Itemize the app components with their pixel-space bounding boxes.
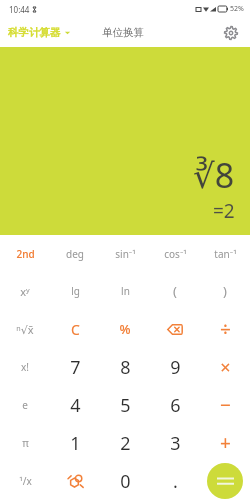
staticText: 9 (170, 355, 181, 380)
button[interactable]: 0 (100, 462, 150, 500)
staticText: 3 (170, 431, 181, 456)
staticText: % (119, 320, 131, 338)
button[interactable]: deg (50, 235, 100, 272)
staticText: xʸ (20, 284, 30, 299)
button[interactable]: × (200, 348, 250, 386)
button[interactable]: ¹/x (0, 462, 50, 500)
staticText: ∛8 (193, 152, 235, 198)
button[interactable]: cos⁻¹ (150, 235, 200, 272)
button[interactable]: e (0, 386, 50, 424)
button[interactable]: 5 (100, 386, 150, 424)
button[interactable]: x! (0, 348, 50, 386)
button[interactable]: 3 (150, 424, 200, 462)
staticText: 6 (170, 393, 181, 418)
button[interactable]: 单位换算 (102, 26, 144, 39)
button[interactable]: 2nd (0, 235, 50, 272)
staticText: 4 (70, 393, 81, 418)
staticText: e (22, 398, 28, 412)
staticText: sin⁻¹ (115, 247, 136, 261)
button[interactable]: % (100, 310, 150, 348)
staticText: x! (21, 360, 29, 374)
staticText: 2nd (16, 247, 35, 261)
button[interactable]: π (0, 424, 50, 462)
button[interactable]: tan⁻¹ (200, 235, 250, 272)
button[interactable]: + (200, 424, 250, 462)
staticText: deg (66, 247, 84, 261)
button[interactable]: Special function (50, 462, 100, 500)
button[interactable]: ) (200, 272, 250, 310)
staticText: tan⁻¹ (214, 247, 237, 261)
staticText: 5 (120, 393, 131, 418)
button[interactable]: Equals (207, 463, 243, 499)
staticText: 7 (70, 355, 81, 380)
button[interactable]: 9 (150, 348, 200, 386)
staticText: lg (71, 284, 80, 298)
staticText: 10:44 (9, 4, 30, 15)
button[interactable]: ÷ (200, 310, 250, 348)
button[interactable]: 7 (50, 348, 100, 386)
staticText: + (220, 430, 231, 456)
staticText: 单位换算 (102, 26, 144, 39)
staticText: ( (173, 282, 177, 300)
button[interactable]: 4 (50, 386, 100, 424)
staticText: 52% (230, 4, 244, 14)
staticText: cos⁻¹ (164, 247, 187, 261)
staticText: 2 (120, 431, 131, 456)
staticText: . (173, 469, 178, 494)
staticText: =2 (213, 198, 235, 224)
staticText: 8 (120, 355, 131, 380)
staticText: π (22, 436, 29, 450)
button[interactable]: lg (50, 272, 100, 310)
staticText: 0 (120, 469, 131, 494)
staticText: ¹/x (19, 474, 32, 488)
staticText: − (220, 392, 231, 418)
button[interactable]: ⁿ√x̄ (0, 310, 50, 348)
button[interactable]: 6 (150, 386, 200, 424)
button[interactable]: Settings (217, 19, 245, 47)
staticText: 1 (70, 431, 81, 456)
staticText: ) (223, 282, 227, 300)
staticText: × (220, 355, 231, 380)
button[interactable]: ( (150, 272, 200, 310)
staticText: C (71, 320, 80, 339)
button[interactable]: . (150, 462, 200, 500)
staticText: 科学计算器 (8, 26, 61, 39)
staticText: ÷ (220, 316, 231, 342)
button[interactable]: ln (100, 272, 150, 310)
button[interactable]: Backspace (150, 310, 200, 348)
button[interactable]: sin⁻¹ (100, 235, 150, 272)
staticText: ln (121, 284, 130, 298)
button[interactable]: 8 (100, 348, 150, 386)
staticText: ⁿ√x̄ (16, 322, 34, 337)
button[interactable]: 科学计算器 (8, 26, 71, 39)
button[interactable]: xʸ (0, 272, 50, 310)
button[interactable]: − (200, 386, 250, 424)
button[interactable]: 1 (50, 424, 100, 462)
button[interactable]: 2 (100, 424, 150, 462)
button[interactable]: C (50, 310, 100, 348)
